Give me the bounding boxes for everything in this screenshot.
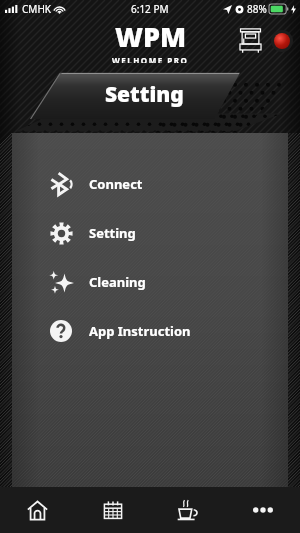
button[interactable]: More xyxy=(225,487,300,533)
button[interactable]: Brew xyxy=(150,487,225,533)
button[interactable]: Home xyxy=(0,487,75,533)
button[interactable]: App Instruction xyxy=(12,306,288,355)
staticText: Cleaning xyxy=(89,273,146,291)
staticText: CMHK xyxy=(22,2,51,16)
staticText: WPM xyxy=(115,18,187,55)
button[interactable]: Connect xyxy=(12,159,288,208)
staticText: Connect xyxy=(89,175,143,193)
staticText: 6:12 PM xyxy=(131,2,169,16)
button[interactable]: Machine xyxy=(237,27,264,54)
staticText: Setting xyxy=(105,80,184,109)
staticText: Setting xyxy=(89,224,136,242)
staticText: App Instruction xyxy=(89,322,191,340)
button[interactable]: Cleaning xyxy=(12,257,288,306)
button[interactable]: Calendar xyxy=(75,487,150,533)
staticText: WELHOME PRO xyxy=(112,55,189,63)
button[interactable]: Power xyxy=(271,30,293,52)
button[interactable]: Setting xyxy=(12,208,288,257)
staticText: 88% xyxy=(247,2,267,16)
button[interactable] xyxy=(0,63,300,133)
